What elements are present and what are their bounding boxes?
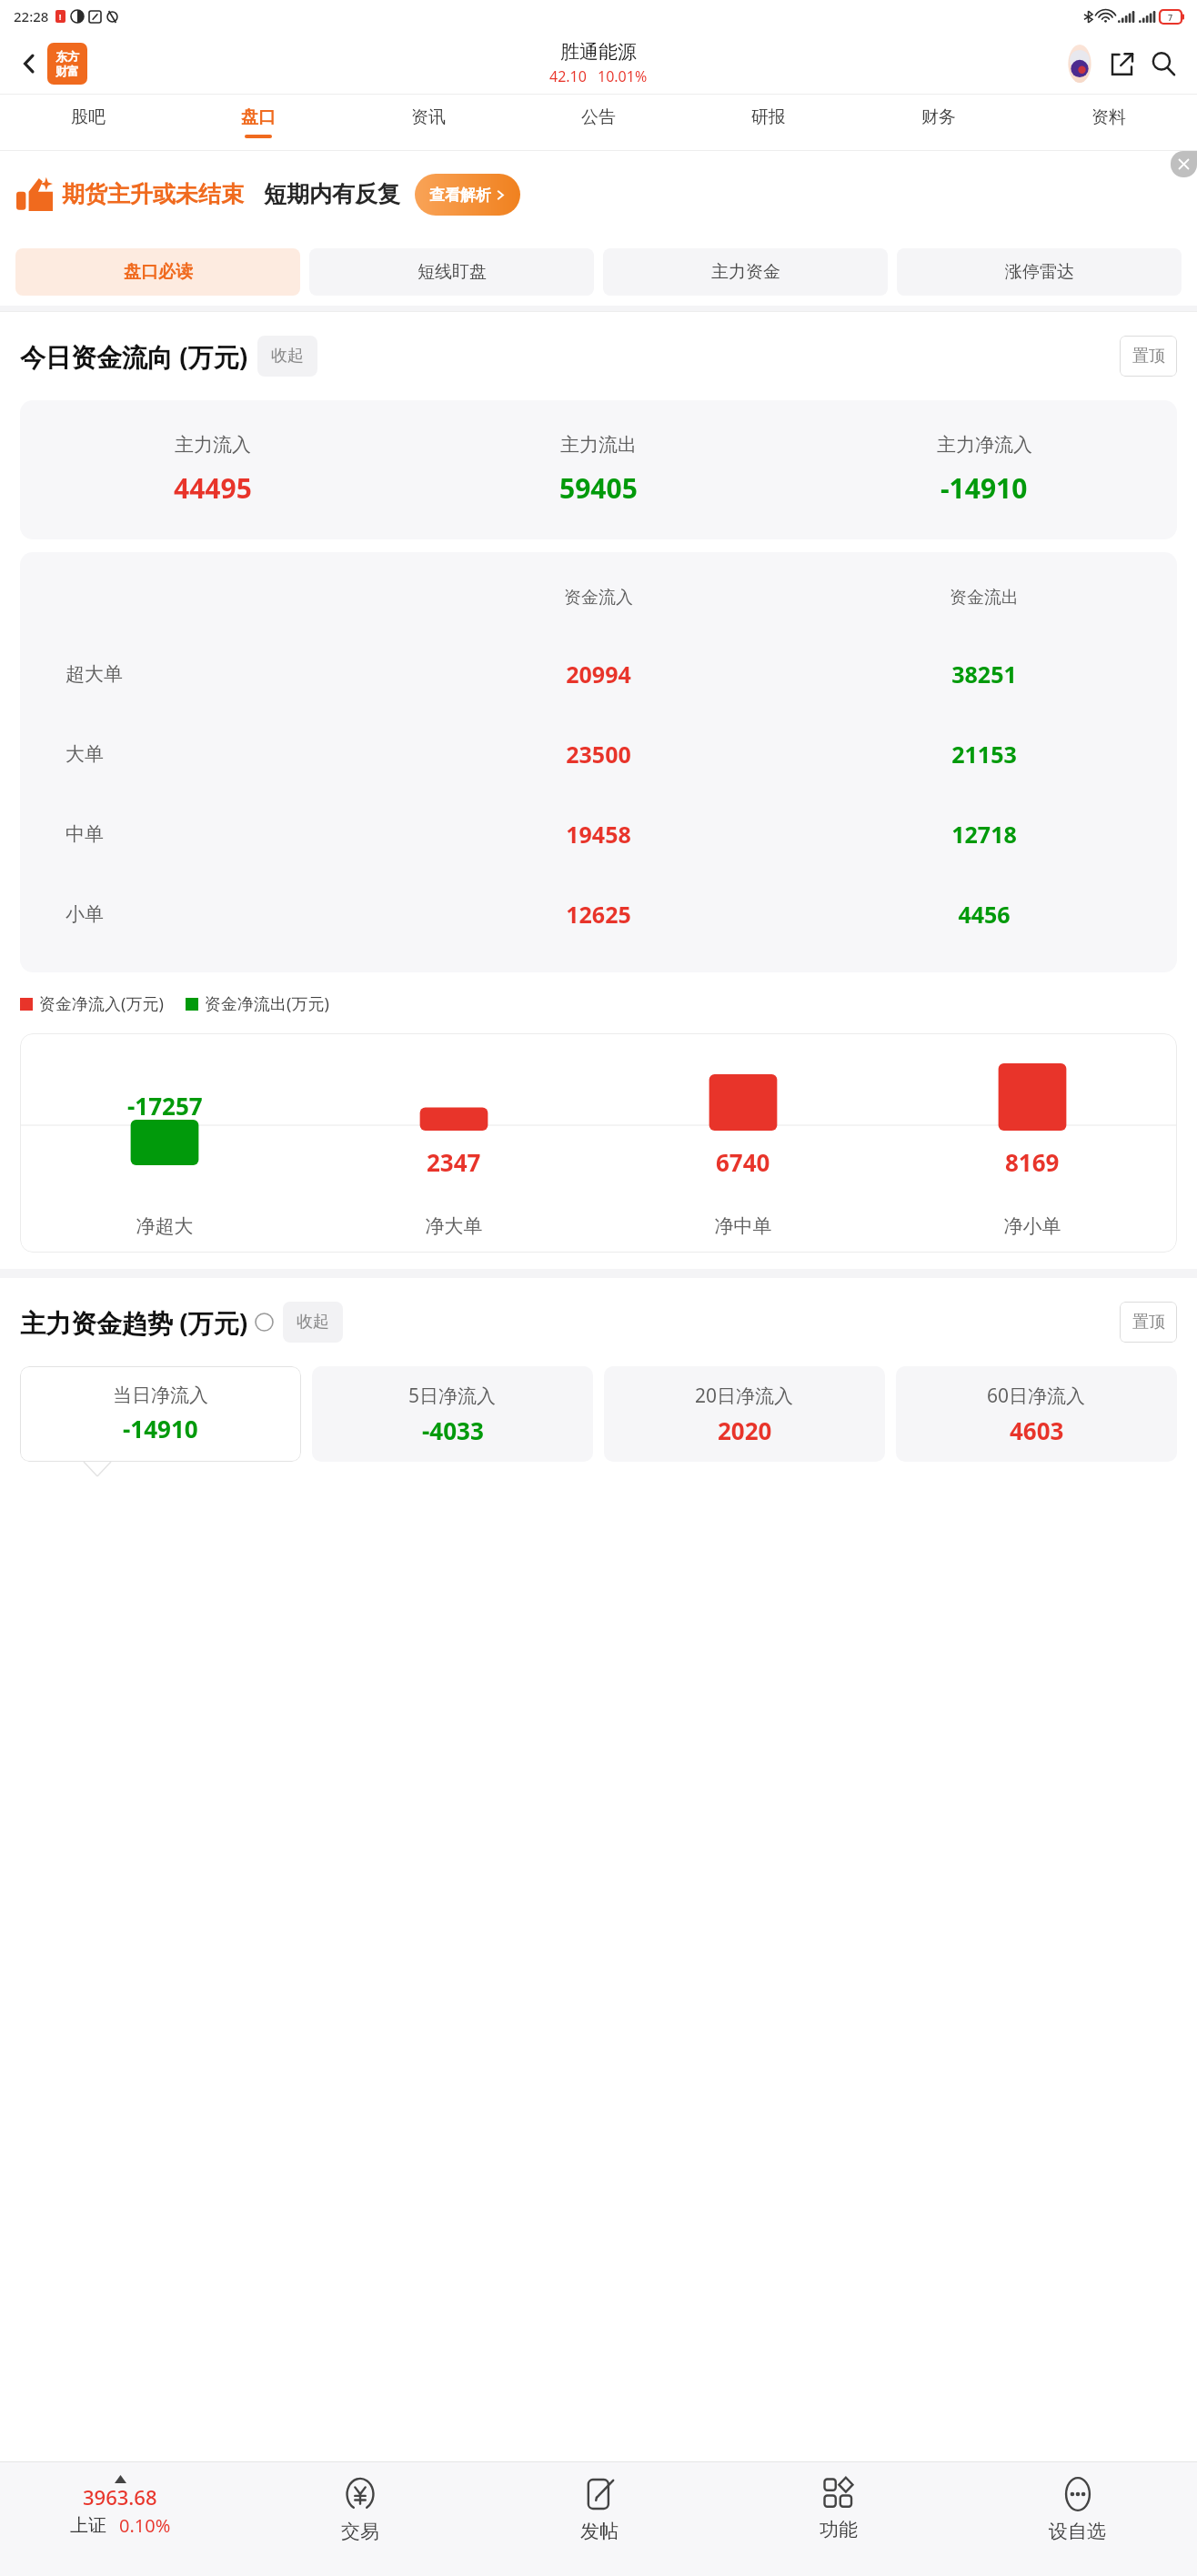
staticText: 研报 bbox=[751, 106, 786, 128]
staticText: -17257 bbox=[127, 1090, 203, 1122]
staticText: 涨停雷达 bbox=[1005, 261, 1074, 283]
staticText: 发帖 bbox=[580, 2520, 619, 2543]
staticText: 收起 bbox=[271, 346, 304, 367]
button[interactable]: 股吧 bbox=[4, 94, 173, 151]
staticText: 财务 bbox=[921, 106, 956, 128]
staticText: 3963.68 bbox=[83, 2483, 157, 2511]
staticText: 42.10 bbox=[549, 66, 587, 86]
staticText: 盘口 bbox=[241, 106, 276, 128]
button[interactable]: 5日净流入 bbox=[312, 1366, 593, 1462]
button[interactable]: 功能 bbox=[719, 2462, 958, 2576]
staticText: 功能 bbox=[820, 2518, 858, 2541]
staticText: 净中单 bbox=[598, 1214, 888, 1238]
staticText: 公告 bbox=[581, 106, 616, 128]
staticText: 查看解析 bbox=[429, 186, 491, 205]
staticText: ! bbox=[59, 12, 62, 22]
staticText: 资金净流出(万元) bbox=[205, 992, 329, 1015]
staticText: 59405 bbox=[559, 469, 638, 507]
staticText: 主力流出 bbox=[560, 433, 637, 457]
staticText: 7 bbox=[1168, 12, 1173, 23]
staticText: 净大单 bbox=[309, 1214, 598, 1238]
button[interactable]: 3963.68 bbox=[0, 2462, 240, 2576]
staticText: 10.01% bbox=[598, 66, 648, 86]
staticText: 大单 bbox=[65, 742, 104, 766]
button[interactable]: 查看解析 bbox=[415, 174, 520, 216]
staticText: 主力净流入 bbox=[937, 433, 1032, 457]
staticText: 财富 bbox=[55, 64, 79, 78]
button[interactable]: 东方财富 bbox=[47, 43, 87, 85]
button[interactable]: 置顶 bbox=[1120, 1302, 1177, 1343]
staticText: -14910 bbox=[940, 469, 1028, 507]
staticText: 净超大 bbox=[20, 1214, 309, 1238]
button[interactable]: 当日净流入 bbox=[20, 1366, 301, 1462]
staticText: 0.10% bbox=[119, 2513, 171, 2538]
button[interactable]: 资讯 bbox=[343, 94, 513, 151]
staticText: 上证 bbox=[70, 2514, 106, 2537]
staticText: 21153 bbox=[791, 739, 1177, 770]
staticText: 23500 bbox=[406, 739, 791, 770]
staticText: 股吧 bbox=[71, 106, 106, 128]
staticText: 东方 bbox=[55, 49, 79, 64]
staticText: 交易 bbox=[341, 2520, 379, 2543]
button[interactable]: 涨停雷达 bbox=[897, 248, 1182, 296]
button[interactable]: 公告 bbox=[513, 94, 683, 151]
button[interactable]: 研报 bbox=[683, 94, 853, 151]
staticText: 4603 bbox=[1010, 1414, 1064, 1446]
staticText: 当日净流入 bbox=[113, 1384, 208, 1407]
staticText: 小单 bbox=[65, 902, 104, 926]
staticText: 盘口必读 bbox=[124, 261, 193, 283]
button[interactable]: Share bbox=[1101, 43, 1142, 85]
staticText: 置顶 bbox=[1132, 1312, 1165, 1333]
button[interactable]: 置顶 bbox=[1120, 336, 1177, 377]
button[interactable]: Search bbox=[1142, 43, 1184, 85]
staticText: 资金净流入(万元) bbox=[39, 992, 164, 1015]
staticText: 主力资金 bbox=[711, 261, 780, 283]
staticText: 期货主升或未结束 bbox=[62, 180, 244, 208]
staticText: 资讯 bbox=[411, 106, 446, 128]
button[interactable]: 财务 bbox=[853, 94, 1023, 151]
staticText: 资料 bbox=[1091, 106, 1126, 128]
button[interactable]: 收起 bbox=[257, 336, 317, 377]
staticText: 置顶 bbox=[1132, 346, 1165, 367]
staticText: 20日净流入 bbox=[695, 1383, 794, 1409]
staticText: 超大单 bbox=[65, 662, 123, 686]
staticText: 8169 bbox=[1005, 1146, 1060, 1178]
button[interactable]: 资料 bbox=[1023, 94, 1193, 151]
staticText: 短线盯盘 bbox=[417, 261, 487, 283]
staticText: 主力流入 bbox=[175, 433, 251, 457]
button[interactable]: Back bbox=[11, 45, 47, 82]
staticText: 净小单 bbox=[888, 1214, 1177, 1238]
staticText: 短期内有反复 bbox=[264, 180, 400, 208]
staticText: 资金流入 bbox=[406, 587, 791, 609]
button[interactable]: 设自选 bbox=[958, 2462, 1197, 2576]
button[interactable]: 主力资金 bbox=[603, 248, 888, 296]
staticText: 6740 bbox=[716, 1146, 770, 1178]
staticText: 4456 bbox=[791, 899, 1177, 930]
button[interactable]: 60日净流入 bbox=[896, 1366, 1177, 1462]
staticText: 收起 bbox=[297, 1312, 329, 1333]
button[interactable]: Help bbox=[255, 1313, 274, 1332]
staticText: 中单 bbox=[65, 822, 104, 846]
staticText: 12718 bbox=[791, 819, 1177, 850]
button[interactable]: 收起 bbox=[283, 1302, 343, 1343]
staticText: 38251 bbox=[791, 659, 1177, 689]
staticText: 今日资金流向 (万元) bbox=[20, 339, 248, 374]
staticText: -14910 bbox=[123, 1413, 198, 1444]
button[interactable]: 发帖 bbox=[479, 2462, 719, 2576]
staticText: 主力资金趋势 (万元) bbox=[20, 1305, 248, 1340]
button[interactable]: 短线盯盘 bbox=[309, 248, 594, 296]
staticText: 60日净流入 bbox=[987, 1383, 1086, 1409]
button[interactable]: Close bbox=[1171, 151, 1197, 177]
staticText: 22:28 bbox=[14, 7, 49, 25]
button[interactable]: 盘口 bbox=[173, 94, 343, 151]
staticText: 20994 bbox=[406, 659, 791, 689]
staticText: 44495 bbox=[174, 469, 252, 507]
staticText: 19458 bbox=[406, 819, 791, 850]
staticText: 5日净流入 bbox=[408, 1383, 497, 1409]
button[interactable]: Assistant bbox=[1059, 43, 1101, 85]
staticText: 2020 bbox=[718, 1414, 772, 1446]
button[interactable]: 20日净流入 bbox=[604, 1366, 885, 1462]
staticText: 资金流出 bbox=[791, 587, 1177, 609]
button[interactable]: 盘口必读 bbox=[15, 248, 300, 296]
button[interactable]: 交易 bbox=[240, 2462, 479, 2576]
